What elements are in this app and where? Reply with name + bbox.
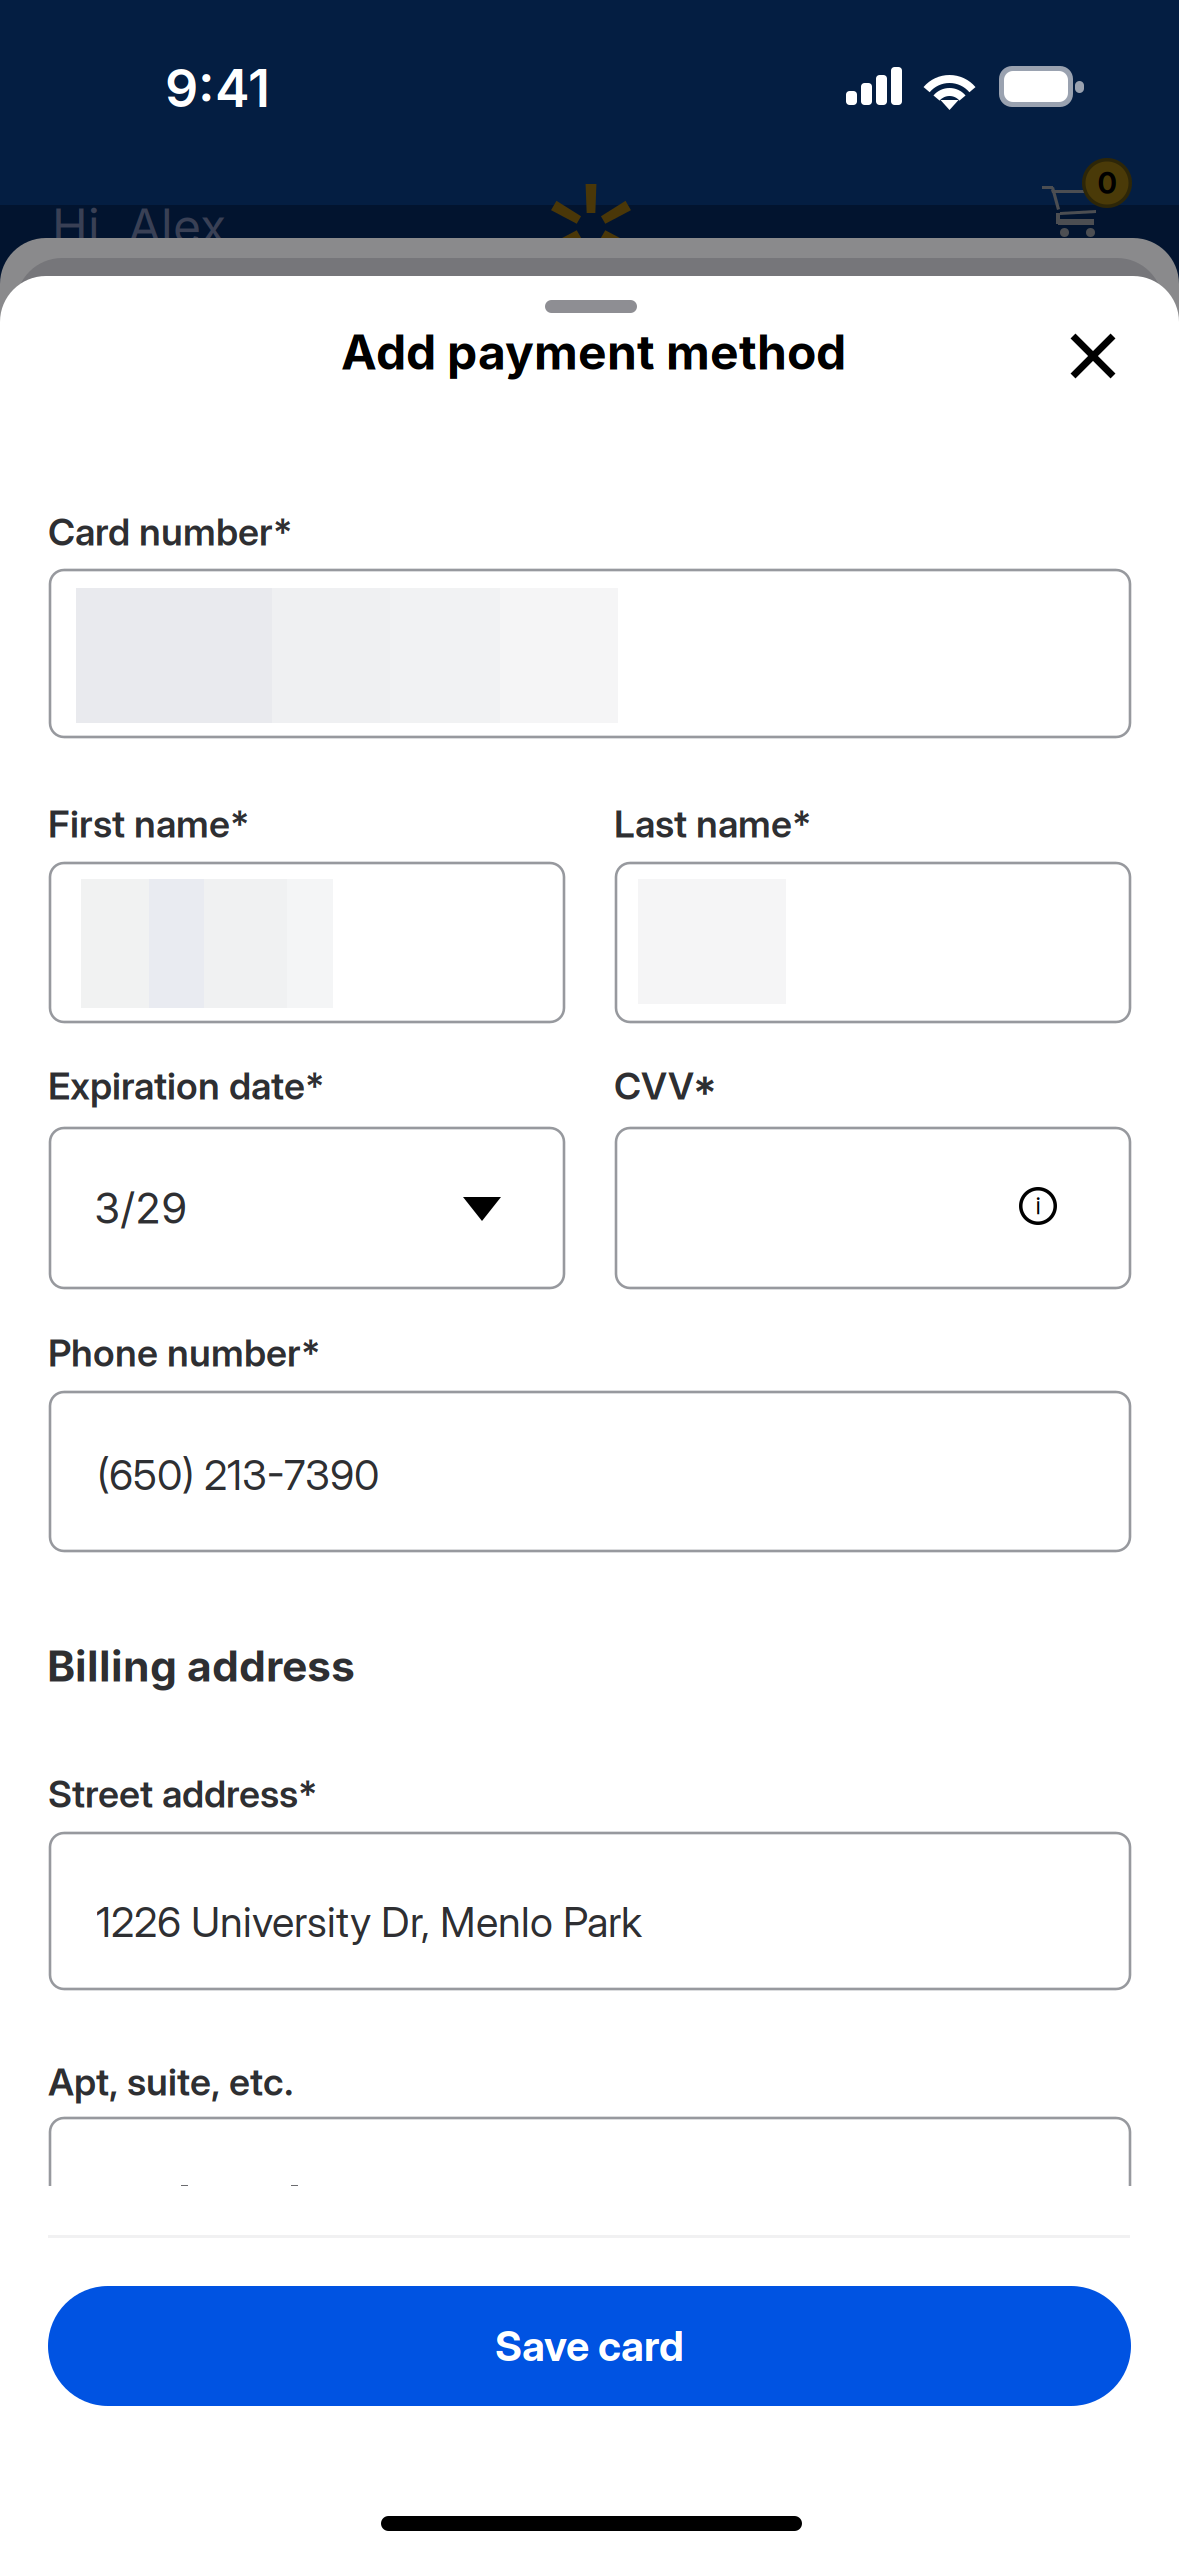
staticText: Hi, Alex [52, 197, 226, 255]
staticText: Apt, suite, etc. [48, 2059, 293, 2105]
staticText: Save card [495, 2321, 684, 2371]
button[interactable]: 3/29 [50, 1128, 564, 1288]
staticText: Card number* [48, 509, 292, 555]
staticText: 1226 University Dr, Menlo Park [96, 1897, 642, 1947]
staticText: Expiration date* [48, 1063, 324, 1109]
staticText: 0 [1097, 165, 1116, 201]
staticText: i [1035, 1192, 1040, 1220]
staticText: (650) 213-7390 [97, 1450, 379, 1500]
staticText: First name* [48, 801, 249, 847]
button[interactable]: CVV help [1019, 1187, 1057, 1225]
button[interactable]: Close [1055, 318, 1135, 398]
staticText: Street address* [48, 1771, 317, 1817]
staticText: CVV* [614, 1063, 717, 1109]
staticText: Phone number* [48, 1330, 320, 1376]
staticText: 9:41 [165, 56, 270, 119]
staticText: Last name* [614, 801, 811, 847]
staticText: Add payment method [341, 323, 846, 381]
button[interactable]: Save card [48, 2286, 1131, 2406]
staticText: Billing address [47, 1640, 355, 1692]
staticText: 3/29 [94, 1182, 187, 1234]
